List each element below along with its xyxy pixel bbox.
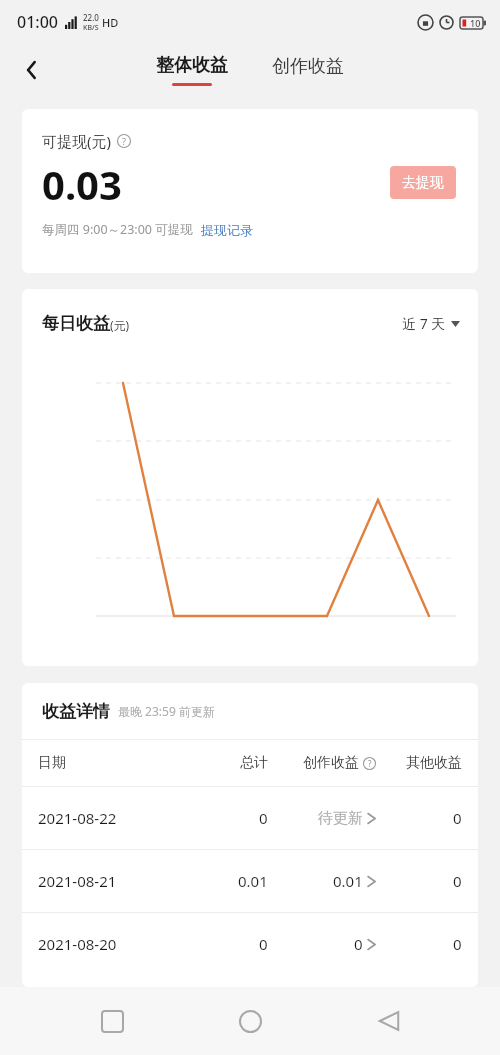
staticText: 整体收益 <box>156 54 228 77</box>
staticText: 最晚 23:59 前更新 <box>118 703 215 719</box>
staticText: 创作收益 <box>272 55 344 78</box>
staticText: 每日收益 <box>42 313 110 334</box>
button[interactable]: 创作收益 <box>266 59 350 82</box>
button[interactable]: 整体收益 <box>150 54 234 86</box>
button[interactable]: 提现记录 <box>201 222 253 238</box>
button[interactable]: Recents <box>85 994 139 1048</box>
staticText: 0.03 <box>42 157 122 211</box>
staticText: 近 7 天 <box>402 314 446 333</box>
staticText: (元) <box>110 317 130 333</box>
staticText: 总计 <box>240 754 268 772</box>
button[interactable]: 2021-08-20 <box>22 913 478 975</box>
staticText: 0 <box>354 934 363 954</box>
button[interactable]: 2021-08-22 <box>22 787 478 849</box>
staticText: 创作收益 <box>303 754 359 772</box>
button[interactable]: Back <box>362 994 416 1048</box>
staticText: ? <box>368 758 372 769</box>
staticText: 其他收益 <box>406 754 462 772</box>
staticText: 0 <box>453 871 462 891</box>
staticText: 提现记录 <box>201 222 253 238</box>
button[interactable]: Back <box>10 48 54 92</box>
button[interactable]: Help <box>117 134 131 148</box>
staticText: 0 <box>259 934 268 954</box>
staticText: 2021-08-22 <box>38 808 117 828</box>
staticText: 22.0 <box>83 12 99 23</box>
staticText: 0 <box>453 934 462 954</box>
staticText: 可提现(元) <box>42 131 112 151</box>
button[interactable]: 近 7 天 <box>402 314 460 333</box>
staticText: 0 <box>259 808 268 828</box>
staticText: 0.01 <box>333 871 363 891</box>
button[interactable]: 2021-08-21 <box>22 850 478 912</box>
staticText: ? <box>122 135 126 147</box>
staticText: 0.01 <box>238 871 268 891</box>
staticText: 待更新 <box>318 809 363 828</box>
staticText: 2021-08-21 <box>38 871 117 891</box>
staticText: KB/S <box>83 23 99 33</box>
staticText: 0 <box>453 808 462 828</box>
staticText: 收益详情 <box>42 701 110 722</box>
staticText: 去提现 <box>402 174 444 192</box>
staticText: 每周四 9:00～23:00 可提现 <box>42 221 193 238</box>
staticText: 01:00 <box>17 11 58 33</box>
staticText: 日期 <box>38 754 66 772</box>
staticText: 2021-08-20 <box>38 934 117 954</box>
staticText: HD <box>102 15 119 30</box>
button[interactable]: Home <box>223 994 277 1048</box>
button[interactable]: 去提现 <box>390 166 456 199</box>
staticText: 10 <box>470 17 481 29</box>
